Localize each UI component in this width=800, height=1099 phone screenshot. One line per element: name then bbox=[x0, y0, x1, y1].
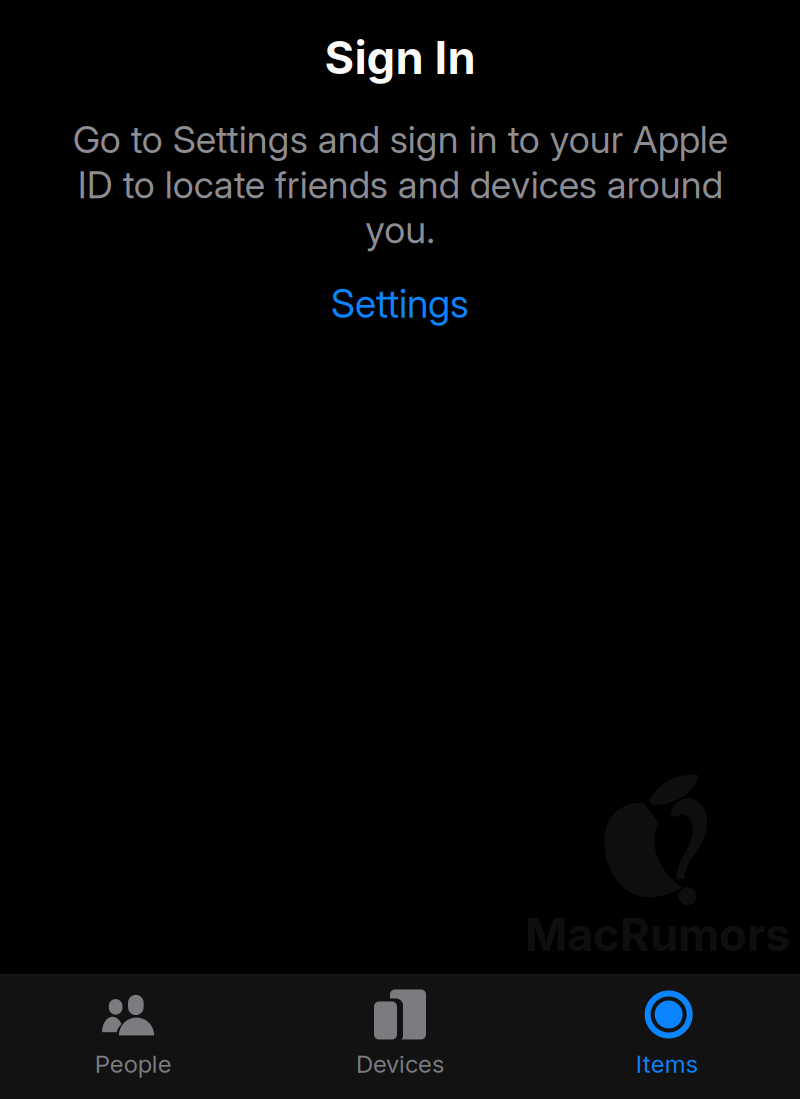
staticText: Items bbox=[636, 1049, 698, 1078]
staticText: Settings bbox=[331, 280, 469, 327]
staticText: Devices bbox=[356, 1049, 444, 1078]
staticText: MacRumors bbox=[525, 907, 790, 962]
staticText: Go to Settings and sign in to your Apple… bbox=[72, 117, 727, 252]
button[interactable]: People bbox=[0, 975, 267, 1099]
staticText: Sign In bbox=[324, 30, 475, 85]
button[interactable]: Items bbox=[533, 975, 800, 1099]
button[interactable]: Devices bbox=[267, 975, 533, 1099]
button[interactable]: Settings bbox=[307, 252, 493, 333]
staticText: People bbox=[95, 1049, 172, 1078]
